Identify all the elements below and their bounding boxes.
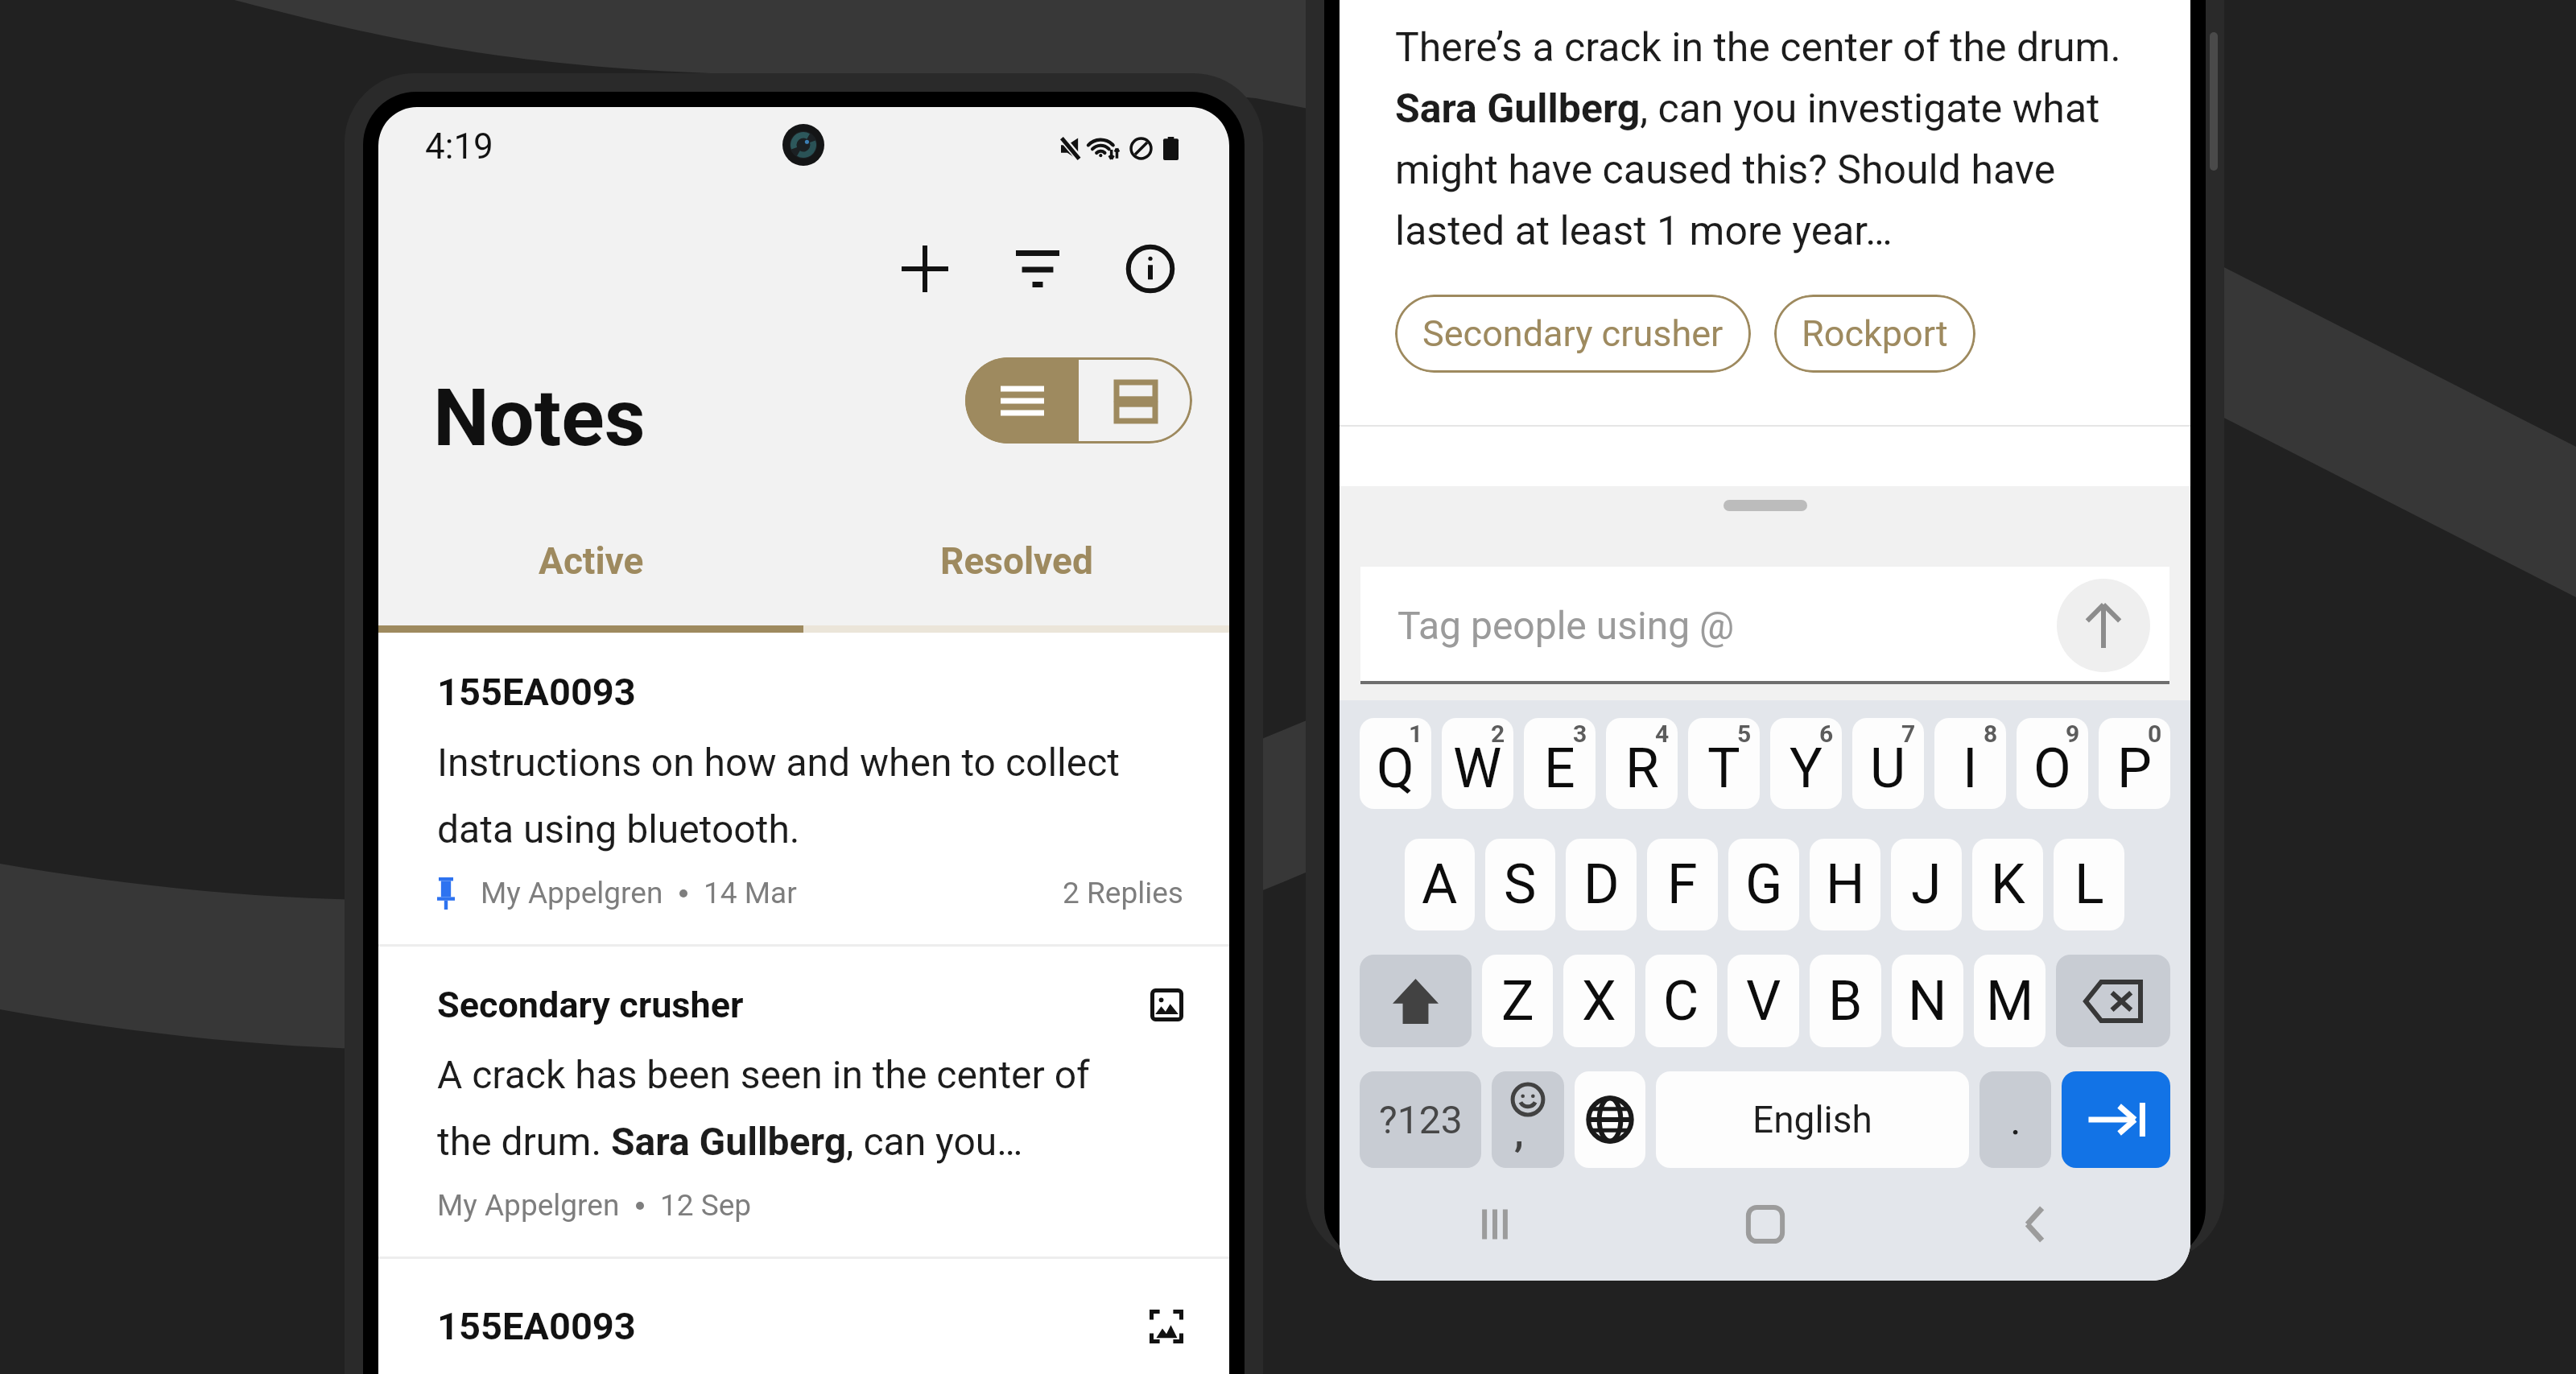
button[interactable]: L [2054,839,2124,930]
staticText: English [1752,1098,1872,1141]
staticText: E [1544,737,1575,801]
staticText: Q [1377,737,1414,801]
staticText: U [1870,737,1906,801]
staticText: C [1663,969,1699,1034]
button[interactable]: ?123 [1360,1071,1481,1168]
button[interactable]: T [1688,718,1760,809]
staticText: J [1911,852,1942,917]
button[interactable]: Q [1360,718,1431,809]
button[interactable]: Emoji and comma [1492,1071,1564,1168]
staticText: 155EA0093 [437,670,636,714]
button[interactable]: M [1974,955,2046,1047]
button[interactable]: 155EA0093 [378,1259,1229,1348]
button[interactable]: R [1606,718,1678,809]
button[interactable]: V [1728,955,1799,1047]
staticText: H [1826,852,1865,917]
button[interactable]: W [1442,718,1513,809]
button[interactable]: A [1405,839,1475,930]
staticText: F [1667,852,1698,917]
button[interactable]: Active [378,484,803,625]
staticText: 8 [1984,720,1998,748]
button[interactable]: U [1852,718,1924,809]
button[interactable]: Add note [877,221,973,317]
button[interactable]: Resolved [803,484,1229,625]
button[interactable]: Secondary crusher [378,947,1229,1256]
button[interactable]: O [2017,718,2088,809]
staticText: 0 [2148,720,2162,748]
button[interactable]: . [1979,1071,2051,1168]
staticText: 12 Sep [660,1188,752,1223]
staticText: M [1986,969,2034,1034]
button[interactable]: Next field [2062,1071,2170,1168]
staticText: Active [539,539,644,583]
button[interactable]: Filter [989,221,1086,317]
button[interactable]: Change keyboard language [1575,1071,1645,1168]
button[interactable]: Shift [1360,955,1472,1047]
staticText: A [1422,852,1458,917]
staticText: 5 [1737,720,1752,748]
staticText: V [1746,969,1781,1034]
staticText: L [2074,852,2104,917]
staticText: . [2010,1095,2021,1145]
button[interactable]: Recent apps [1443,1172,1547,1277]
staticText: My Appelgren [481,876,663,910]
button[interactable]: C [1645,955,1717,1047]
button[interactable]: G [1728,839,1799,930]
staticText: Notes [433,371,646,464]
staticText: 4:19 [425,126,493,167]
staticText: X [1582,969,1616,1034]
button[interactable]: Home [1713,1172,1818,1277]
button[interactable]: N [1892,955,1963,1047]
button[interactable]: E [1524,718,1596,809]
button[interactable]: F [1647,839,1718,930]
staticText: O [2033,737,2071,801]
button[interactable]: Z [1482,955,1553,1047]
button[interactable]: D [1566,839,1637,930]
staticText: , [1514,1110,1524,1155]
button[interactable]: Y [1770,718,1842,809]
staticText: 7 [1901,720,1916,748]
button[interactable]: Rockport [1774,295,1975,373]
staticText: K [1991,852,2025,917]
staticText: 3 [1573,720,1587,748]
button[interactable]: B [1810,955,1881,1047]
button[interactable]: H [1810,839,1880,930]
staticText: 2 Replies [1063,876,1183,910]
staticText: Resolved [940,539,1093,583]
staticText: Rockport [1802,312,1948,355]
staticText: 1 [1409,720,1423,748]
staticText: N [1908,969,1947,1034]
staticText: 6 [1819,720,1834,748]
staticText: 155EA0093 [437,1304,1150,1348]
button[interactable]: S [1485,839,1555,930]
button[interactable]: Back [1983,1172,2087,1277]
staticText: 4 [1655,720,1670,748]
staticText: Secondary crusher [437,984,1150,1026]
staticText: B [1828,969,1863,1034]
staticText: I [1963,737,1978,801]
staticText: D [1583,852,1620,917]
button[interactable]: English [1656,1071,1969,1168]
button[interactable]: Switch list and card view [965,357,1192,444]
staticText: ?123 [1379,1097,1463,1142]
button[interactable]: Send [2057,579,2150,672]
button[interactable]: X [1563,955,1635,1047]
staticText: There’s a crack in the center of the dru… [1395,24,2142,254]
button[interactable]: Backspace [2056,955,2170,1047]
button[interactable]: 155EA0093 [378,633,1229,944]
staticText: T [1707,737,1740,801]
staticText: My Appelgren [437,1188,620,1223]
staticText: Z [1501,969,1534,1034]
button[interactable]: J [1891,839,1962,930]
staticText: W [1453,737,1502,801]
button[interactable]: Information [1102,221,1199,317]
staticText: 2 [1491,720,1505,748]
staticText: 14 Mar [704,876,797,910]
button[interactable]: I [1934,718,2006,809]
button[interactable]: P [2099,718,2170,809]
button[interactable]: K [1972,839,2043,930]
button[interactable]: Secondary crusher [1395,295,1751,373]
staticText: R [1625,737,1659,801]
staticText: P [2117,737,2152,801]
staticText: Instructions on how and when to collect … [437,740,1137,852]
